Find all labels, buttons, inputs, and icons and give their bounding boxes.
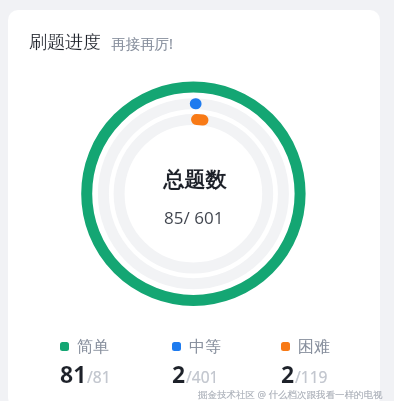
button[interactable]: 中等 [172, 337, 221, 389]
staticText: 掘金技术社区 @ 什么档次跟我看一样的电视 [198, 388, 383, 401]
staticText: 总题数 [163, 167, 226, 193]
staticText: 困难 [298, 337, 330, 357]
staticText: 2 [172, 358, 186, 389]
staticText: 81 [60, 358, 87, 389]
staticText: 2 [281, 358, 295, 389]
button[interactable]: 简单 [60, 337, 111, 389]
staticText: 简单 [77, 337, 109, 357]
staticText: 刷题进度 [29, 31, 101, 54]
staticText: 中等 [189, 337, 221, 357]
staticText: 85/ 601 [164, 206, 224, 229]
staticText: /119 [295, 366, 328, 387]
button[interactable]: 困难 [281, 337, 330, 389]
staticText: /81 [87, 366, 111, 387]
button[interactable] [8, 10, 380, 408]
staticText: 再接再厉! [111, 33, 173, 53]
staticText: /401 [186, 366, 219, 387]
